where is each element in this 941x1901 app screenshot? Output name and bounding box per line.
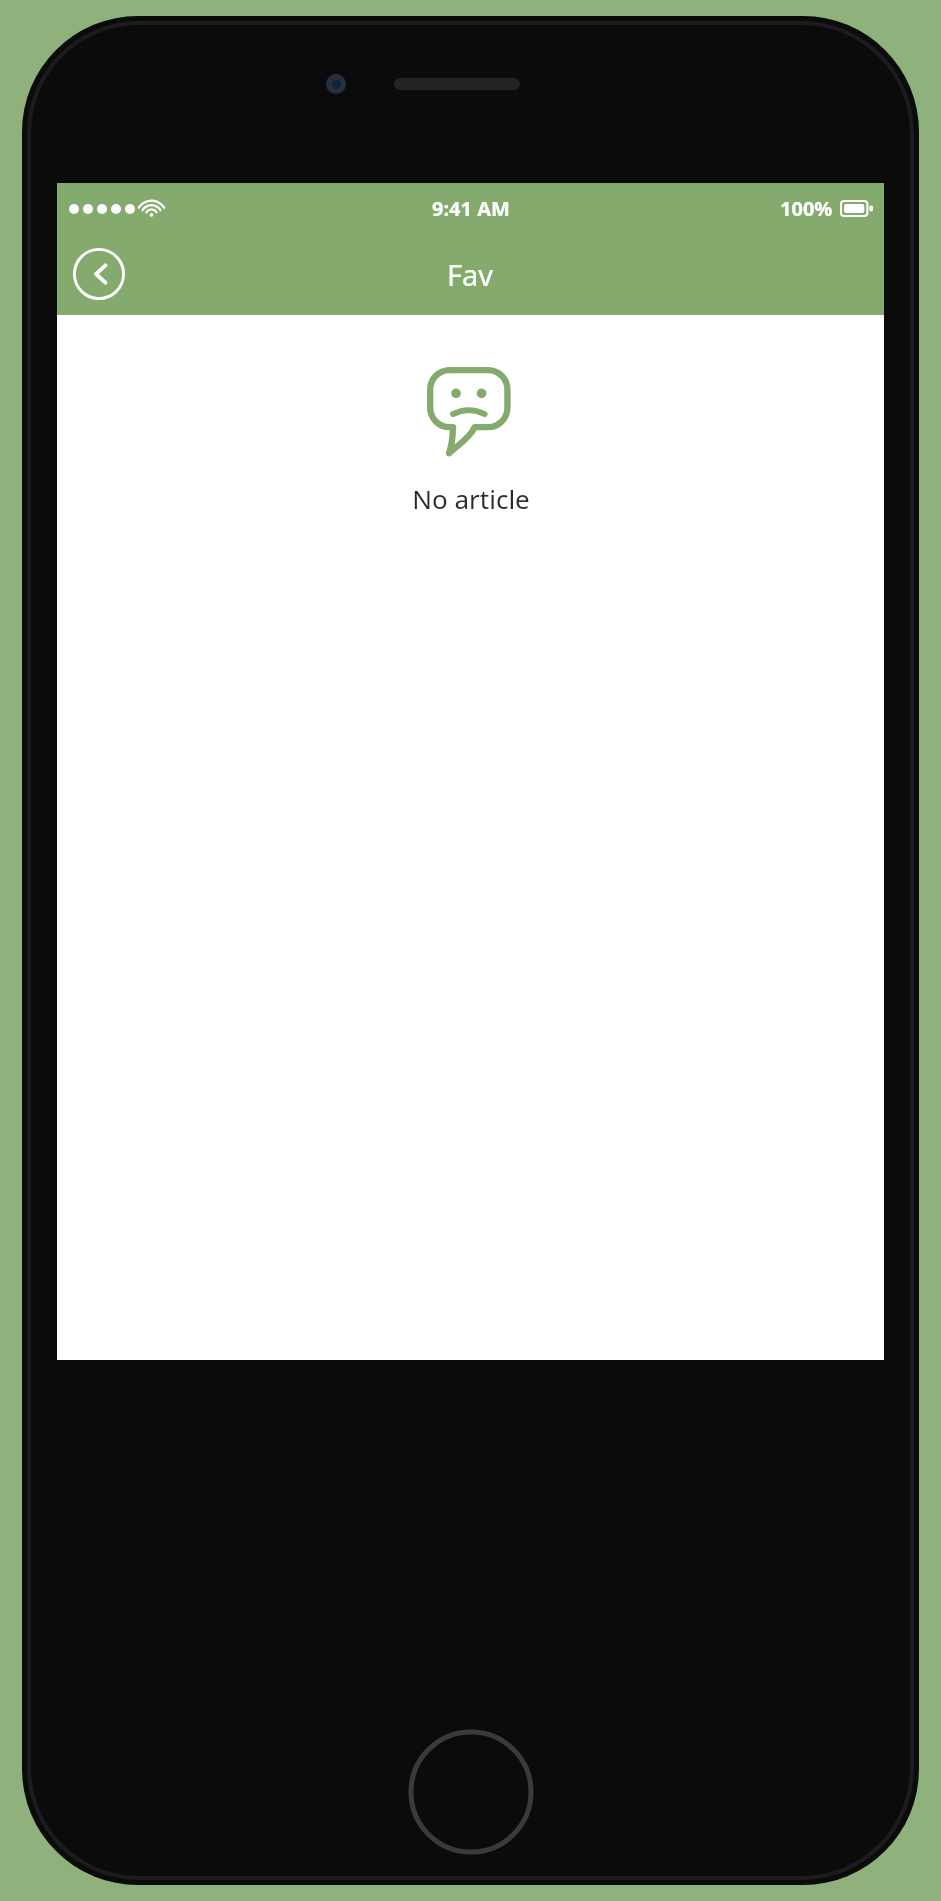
button[interactable]: Back	[71, 246, 127, 302]
staticText: 9:41 AM	[432, 195, 510, 222]
button[interactable]: Home	[406, 1727, 536, 1857]
staticText: 100%	[780, 195, 833, 222]
staticText: Fav	[447, 255, 494, 294]
staticText: No article	[412, 481, 530, 516]
